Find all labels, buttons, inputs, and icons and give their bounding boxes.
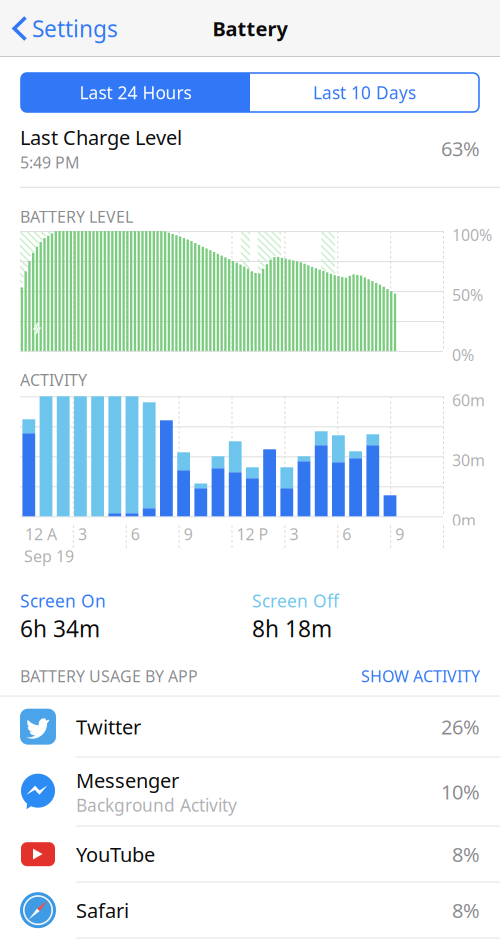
staticText: Last Charge Level bbox=[20, 124, 182, 151]
staticText: 9 bbox=[184, 523, 193, 544]
staticText: 63% bbox=[441, 135, 480, 162]
button[interactable]: Last 24 Hours bbox=[21, 73, 250, 112]
staticText: Messenger bbox=[76, 767, 179, 793]
staticText: 6 bbox=[131, 523, 140, 544]
staticText: 60m bbox=[452, 389, 485, 410]
staticText: Last 10 Days bbox=[313, 81, 416, 104]
staticText: Twitter bbox=[76, 713, 141, 740]
staticText: 0m bbox=[452, 509, 476, 530]
staticText: Safari bbox=[76, 897, 129, 923]
staticText: 100% bbox=[452, 224, 492, 245]
staticText: 30m bbox=[452, 449, 485, 470]
button[interactable]: SHOW ACTIVITY bbox=[361, 665, 480, 687]
staticText: 3 bbox=[78, 523, 87, 544]
staticText: 12 A bbox=[25, 523, 57, 544]
staticText: Last 24 Hours bbox=[79, 81, 191, 104]
button[interactable]: Settings bbox=[0, 0, 128, 56]
staticText: BATTERY USAGE BY APP bbox=[20, 665, 198, 687]
staticText: SHOW ACTIVITY bbox=[361, 665, 480, 687]
staticText: Settings bbox=[32, 13, 118, 43]
staticText: 8% bbox=[452, 841, 480, 867]
staticText: Sep 19 bbox=[24, 545, 74, 566]
staticText: Screen On bbox=[20, 589, 106, 612]
staticText: 26% bbox=[441, 713, 480, 740]
staticText: YouTube bbox=[76, 841, 155, 867]
staticText: 0% bbox=[452, 344, 474, 365]
staticText: 5:49 PM bbox=[20, 152, 80, 173]
staticText: 8% bbox=[452, 897, 480, 923]
button[interactable]: Last 10 Days bbox=[250, 73, 479, 112]
staticText: 6 bbox=[342, 523, 351, 544]
staticText: Battery bbox=[212, 15, 287, 42]
staticText: 10% bbox=[441, 778, 480, 805]
button[interactable]: Twitter bbox=[0, 697, 500, 758]
staticText: 3 bbox=[289, 523, 298, 544]
staticText: BATTERY LEVEL bbox=[20, 206, 133, 227]
staticText: 6h 34m bbox=[20, 613, 100, 643]
staticText: 8h 18m bbox=[252, 613, 332, 643]
staticText: 9 bbox=[395, 523, 404, 544]
button[interactable]: Safari bbox=[0, 883, 500, 939]
button[interactable]: Messenger bbox=[0, 758, 500, 827]
staticText: 12 P bbox=[236, 523, 268, 544]
staticText: Screen Off bbox=[252, 589, 339, 612]
staticText: 50% bbox=[452, 284, 483, 305]
staticText: ACTIVITY bbox=[20, 369, 87, 390]
staticText: Background Activity bbox=[76, 793, 237, 816]
button[interactable]: YouTube bbox=[0, 827, 500, 883]
